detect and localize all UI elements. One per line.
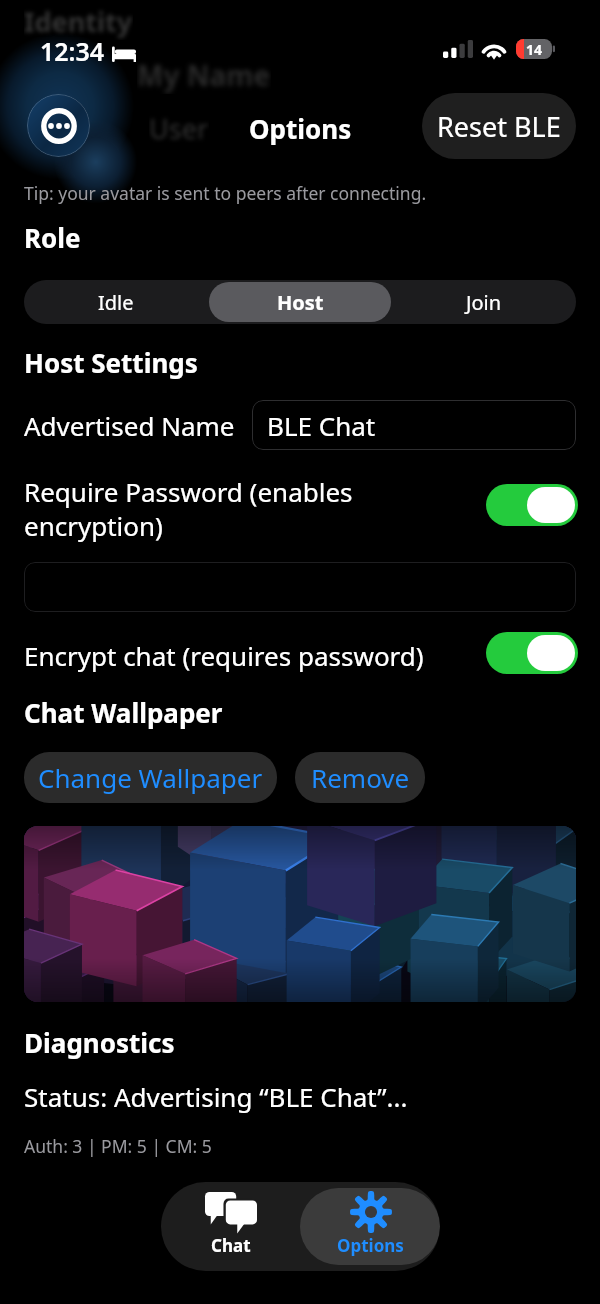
staticText: Role xyxy=(24,220,81,255)
staticText: Require Password (enables encryption) xyxy=(24,474,353,544)
staticText: Remove xyxy=(311,760,410,795)
button[interactable]: Avatar xyxy=(27,94,90,157)
staticText: Encrypt chat (requires password) xyxy=(24,638,424,673)
staticText: My Name xyxy=(137,56,271,94)
staticText: Idle xyxy=(98,289,134,316)
button[interactable]: Idle xyxy=(25,282,207,322)
staticText: Identity xyxy=(24,3,133,40)
button[interactable] xyxy=(24,562,576,612)
staticText: Tip: your avatar is sent to peers after … xyxy=(24,181,427,205)
staticText: Auth: 3 | PM: 5 | CM: 5 xyxy=(24,1134,212,1158)
staticText: Status: Advertising “BLE Chat”... xyxy=(24,1079,408,1114)
staticText: Join xyxy=(466,289,502,316)
staticText: Host Settings xyxy=(24,345,198,380)
button[interactable]: Options xyxy=(300,1188,440,1265)
staticText: Options xyxy=(337,1234,404,1257)
button[interactable]: BLE Chat xyxy=(252,400,576,450)
button[interactable]: Reset BLE xyxy=(422,93,576,159)
staticText: Change Wallpaper xyxy=(38,760,263,795)
staticText: Advertised Name xyxy=(24,408,235,443)
staticText: Chat Wallpaper xyxy=(24,695,223,730)
staticText: Host xyxy=(277,289,324,316)
button[interactable]: Change Wallpaper xyxy=(24,752,277,803)
button[interactable]: Chat xyxy=(161,1188,300,1265)
button[interactable]: Toggle xyxy=(486,484,578,526)
button[interactable]: Remove xyxy=(295,752,425,803)
staticText: Chat xyxy=(211,1234,251,1257)
staticText: Options xyxy=(249,111,352,146)
staticText: Diagnostics xyxy=(24,1025,175,1060)
button[interactable]: Join xyxy=(393,282,575,322)
staticText: 12:34 xyxy=(40,34,105,68)
staticText: 14 xyxy=(526,40,543,59)
button[interactable]: Toggle xyxy=(486,632,578,674)
button[interactable]: Host xyxy=(209,282,391,322)
staticText: User xyxy=(149,110,209,147)
staticText: BLE Chat xyxy=(267,408,376,443)
staticText: Reset BLE xyxy=(437,108,561,145)
